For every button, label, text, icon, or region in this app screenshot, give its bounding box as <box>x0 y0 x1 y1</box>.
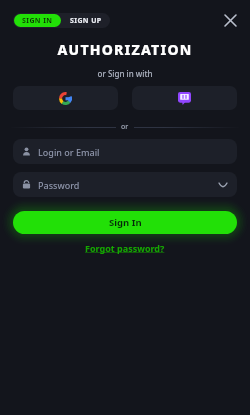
button[interactable]: Show password options <box>217 179 229 191</box>
button[interactable]: Close <box>218 8 242 32</box>
staticText: SIGN UP <box>70 16 102 26</box>
button[interactable]: Login or Email <box>13 139 237 164</box>
button[interactable]: Sign In <box>13 211 237 234</box>
staticText: Password <box>38 179 80 191</box>
staticText: Login or Email <box>38 146 100 158</box>
button[interactable]: SIGN UP <box>62 13 110 28</box>
staticText: Forgot password? <box>85 242 165 254</box>
button[interactable]: Forgot password? <box>79 240 171 256</box>
staticText: SIGN IN <box>22 16 53 26</box>
staticText: or <box>121 122 129 132</box>
button[interactable]: Password <box>13 172 237 197</box>
button[interactable]: Sign in with Google <box>13 86 118 110</box>
staticText: Sign In <box>109 216 142 229</box>
button[interactable]: SIGN IN <box>14 14 61 27</box>
button[interactable]: Sign in with Twitch <box>132 86 237 110</box>
staticText: or Sign in with <box>0 68 250 79</box>
staticText: AUTHORIZATION <box>0 40 250 59</box>
